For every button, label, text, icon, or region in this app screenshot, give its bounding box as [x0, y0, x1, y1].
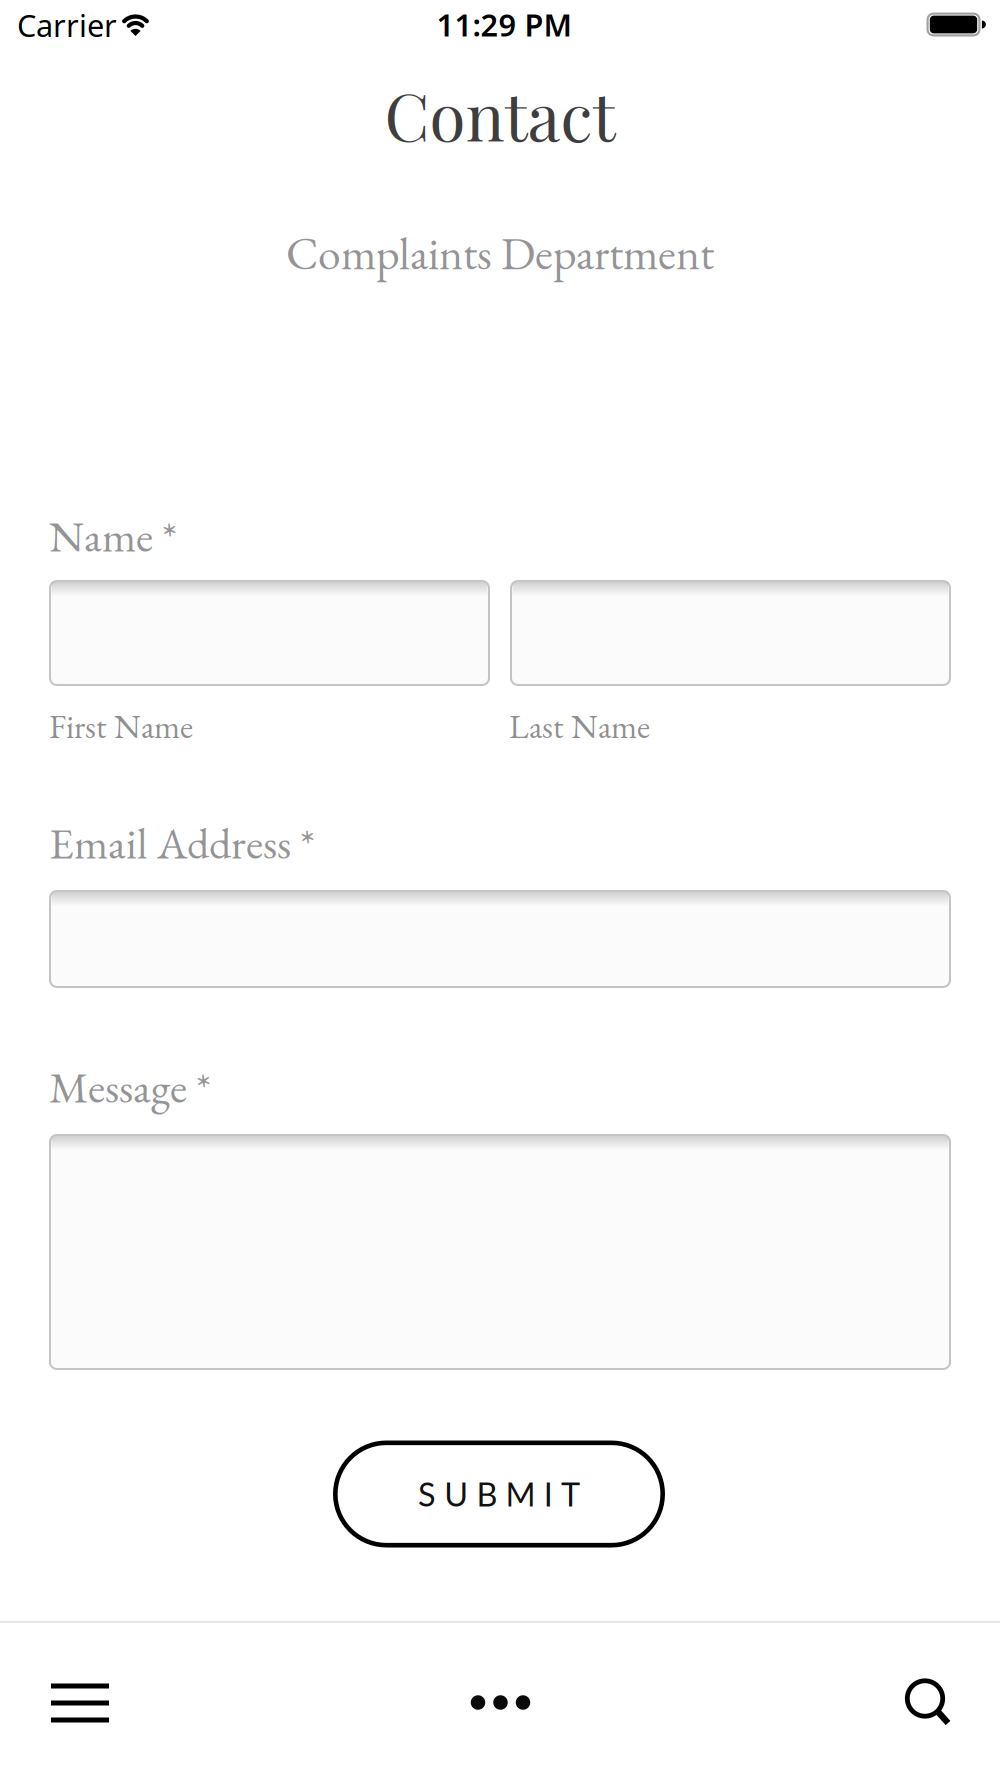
staticText: First Name — [49, 704, 193, 748]
staticText: Email Address * — [49, 814, 315, 872]
staticText: Carrier — [17, 5, 117, 45]
staticText: Contact — [384, 70, 615, 158]
staticText: S — [418, 1475, 436, 1513]
staticText: I — [544, 1475, 553, 1513]
button[interactable]: Message — [49, 1134, 951, 1370]
button[interactable]: Menu — [51, 1683, 109, 1722]
staticText: Name * — [49, 507, 177, 565]
staticText: Complaints Department — [286, 223, 714, 283]
button[interactable]: Email Address — [49, 890, 951, 988]
button[interactable]: More — [471, 1695, 530, 1710]
staticText: 11:29 PM — [436, 4, 571, 45]
staticText: U — [444, 1475, 468, 1513]
staticText: Last Name — [509, 704, 650, 748]
button[interactable]: Last Name — [510, 580, 951, 686]
button[interactable]: First Name — [49, 580, 490, 686]
staticText: Message * — [49, 1058, 211, 1116]
staticText: B — [476, 1475, 497, 1513]
button[interactable]: Search — [904, 1678, 952, 1726]
staticText: M — [506, 1475, 536, 1513]
button[interactable]: S — [333, 1440, 665, 1547]
staticText: T — [561, 1475, 580, 1513]
